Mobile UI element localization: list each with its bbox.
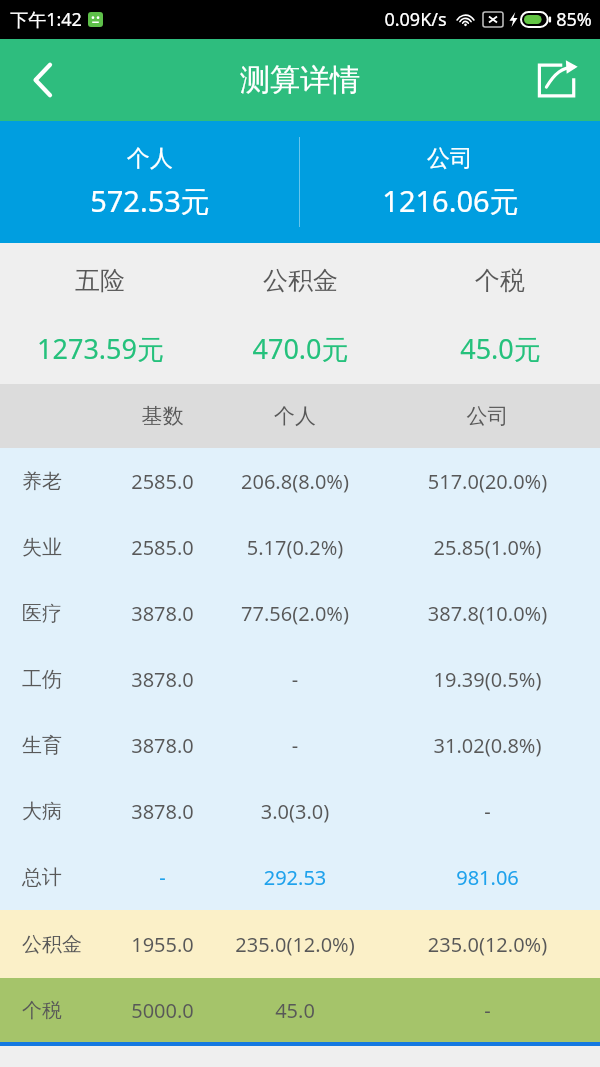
staticText: 0.09K/s — [384, 7, 447, 32]
staticText: 45.0元 — [460, 330, 541, 367]
staticText: 387.8(10.0%) — [375, 600, 600, 627]
staticText: 1955.0 — [110, 931, 215, 958]
staticText: 235.0(12.0%) — [215, 931, 375, 958]
staticText: 测算详情 — [240, 61, 360, 99]
staticText: - — [215, 732, 375, 759]
staticText: 981.06 — [375, 864, 600, 891]
staticText: 3878.0 — [110, 798, 215, 825]
staticText: 五险 — [75, 265, 125, 296]
staticText: 2585.0 — [110, 534, 215, 561]
staticText: - — [215, 666, 375, 693]
button[interactable]: 个税 — [0, 978, 600, 1042]
button[interactable]: Back — [0, 39, 86, 121]
staticText: 5.17(0.2%) — [215, 534, 375, 561]
staticText: 公积金 — [22, 932, 82, 957]
staticText: 个税 — [475, 265, 525, 296]
staticText: 19.39(0.5%) — [375, 666, 600, 693]
staticText: 公司 — [427, 144, 473, 173]
button[interactable]: 医疗 — [0, 580, 600, 646]
staticText: 总计 — [22, 865, 62, 890]
staticText: 5000.0 — [110, 997, 215, 1024]
staticText: 235.0(12.0%) — [375, 931, 600, 958]
button[interactable]: 大病 — [0, 778, 600, 844]
staticText: 3878.0 — [110, 666, 215, 693]
staticText: 下午1:42 — [10, 7, 82, 32]
staticText: 公积金 — [263, 265, 338, 296]
staticText: 生育 — [22, 733, 62, 758]
button[interactable]: 养老 — [0, 448, 600, 514]
staticText: - — [375, 997, 600, 1024]
staticText: 个人 — [215, 403, 375, 429]
button[interactable]: 失业 — [0, 514, 600, 580]
button[interactable]: 总计 — [0, 844, 600, 910]
staticText: 1216.06元 — [382, 181, 519, 221]
staticText: 25.85(1.0%) — [375, 534, 600, 561]
staticText: 个人 — [127, 144, 173, 173]
staticText: 572.53元 — [90, 181, 210, 221]
staticText: 2585.0 — [110, 468, 215, 495]
staticText: 3878.0 — [110, 732, 215, 759]
staticText: 工伤 — [22, 667, 62, 692]
staticText: 失业 — [22, 535, 62, 560]
staticText: 基数 — [110, 403, 215, 429]
staticText: 医疗 — [22, 601, 62, 626]
staticText: - — [110, 864, 215, 891]
staticText: 1273.59元 — [37, 330, 164, 367]
staticText: 77.56(2.0%) — [215, 600, 375, 627]
staticText: 470.0元 — [252, 330, 349, 367]
staticText: 3.0(3.0) — [215, 798, 375, 825]
staticText: 206.8(8.0%) — [215, 468, 375, 495]
staticText: 517.0(20.0%) — [375, 468, 600, 495]
button[interactable]: 公积金 — [0, 910, 600, 978]
staticText: 85% — [556, 7, 592, 32]
staticText: 公司 — [375, 403, 600, 429]
button[interactable]: Share — [514, 39, 600, 121]
button[interactable]: 工伤 — [0, 646, 600, 712]
staticText: 45.0 — [215, 997, 375, 1024]
button[interactable]: 生育 — [0, 712, 600, 778]
staticText: 个税 — [22, 998, 62, 1023]
staticText: 3878.0 — [110, 600, 215, 627]
staticText: 大病 — [22, 799, 62, 824]
staticText: 养老 — [22, 469, 62, 494]
staticText: 31.02(0.8%) — [375, 732, 600, 759]
staticText: - — [375, 798, 600, 825]
staticText: 292.53 — [215, 864, 375, 891]
